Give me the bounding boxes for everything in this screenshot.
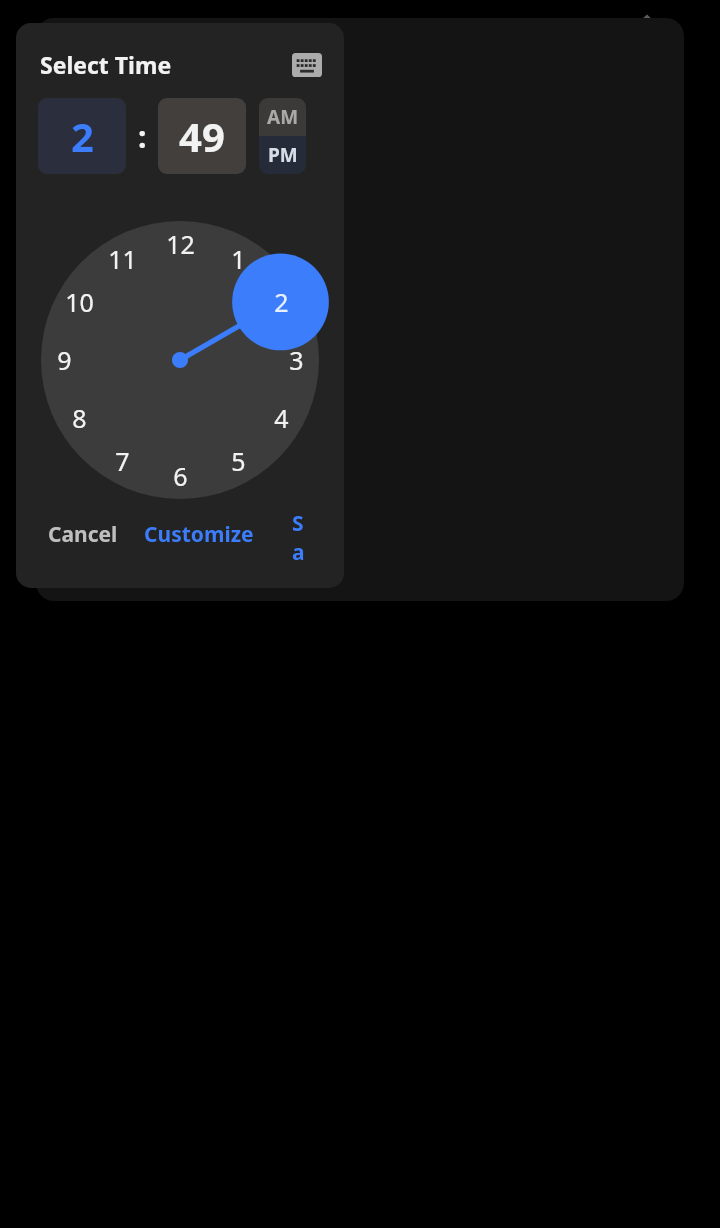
staticText: Customize — [144, 520, 254, 549]
staticText: Cancel — [48, 520, 118, 549]
button[interactable]: Switch to text input — [292, 52, 322, 78]
button[interactable]: 6 — [152, 448, 208, 504]
button[interactable]: 9 — [36, 332, 92, 388]
staticText: Al — [55, 15, 78, 46]
staticText: 5 — [231, 444, 246, 478]
staticText: AM — [267, 104, 299, 130]
staticText: 12 — [166, 227, 195, 261]
button[interactable]: 3 — [268, 332, 324, 388]
staticText: : — [138, 116, 147, 157]
button[interactable]: 5 — [210, 433, 266, 489]
button[interactable]: Customize — [132, 510, 266, 559]
staticText: 3 — [289, 343, 304, 377]
button[interactable]: 49 — [158, 98, 246, 174]
button[interactable]: AM — [259, 98, 306, 136]
button[interactable]: 1 — [210, 231, 266, 287]
button[interactable]: 2 — [38, 98, 126, 174]
staticText: 10 — [65, 285, 94, 319]
button[interactable]: Save — [280, 499, 326, 570]
staticText: 1 — [231, 242, 246, 276]
staticText: 6 — [173, 459, 188, 493]
button[interactable]: PM — [259, 136, 306, 174]
button[interactable]: 4 — [253, 390, 309, 446]
button[interactable]: 10 — [51, 274, 107, 330]
staticText: 8 — [72, 401, 87, 435]
staticText: 4 — [274, 401, 289, 435]
button[interactable]: 12 — [152, 216, 208, 272]
staticText: Select Time — [40, 49, 172, 80]
button[interactable]: 2 — [253, 274, 309, 330]
staticText: 9 — [57, 343, 72, 377]
button[interactable]: 7 — [94, 433, 150, 489]
staticText: PM — [268, 142, 298, 168]
button[interactable]: 8 — [51, 390, 107, 446]
button[interactable]: Cancel — [34, 510, 132, 559]
staticText: Save — [292, 509, 314, 560]
button[interactable]: 11 — [94, 231, 150, 287]
staticText: 11 — [108, 242, 137, 276]
staticText: 2 — [71, 109, 94, 163]
staticText: 7 — [115, 444, 130, 478]
staticText: 2 — [274, 285, 289, 319]
staticText: 49 — [179, 109, 225, 163]
